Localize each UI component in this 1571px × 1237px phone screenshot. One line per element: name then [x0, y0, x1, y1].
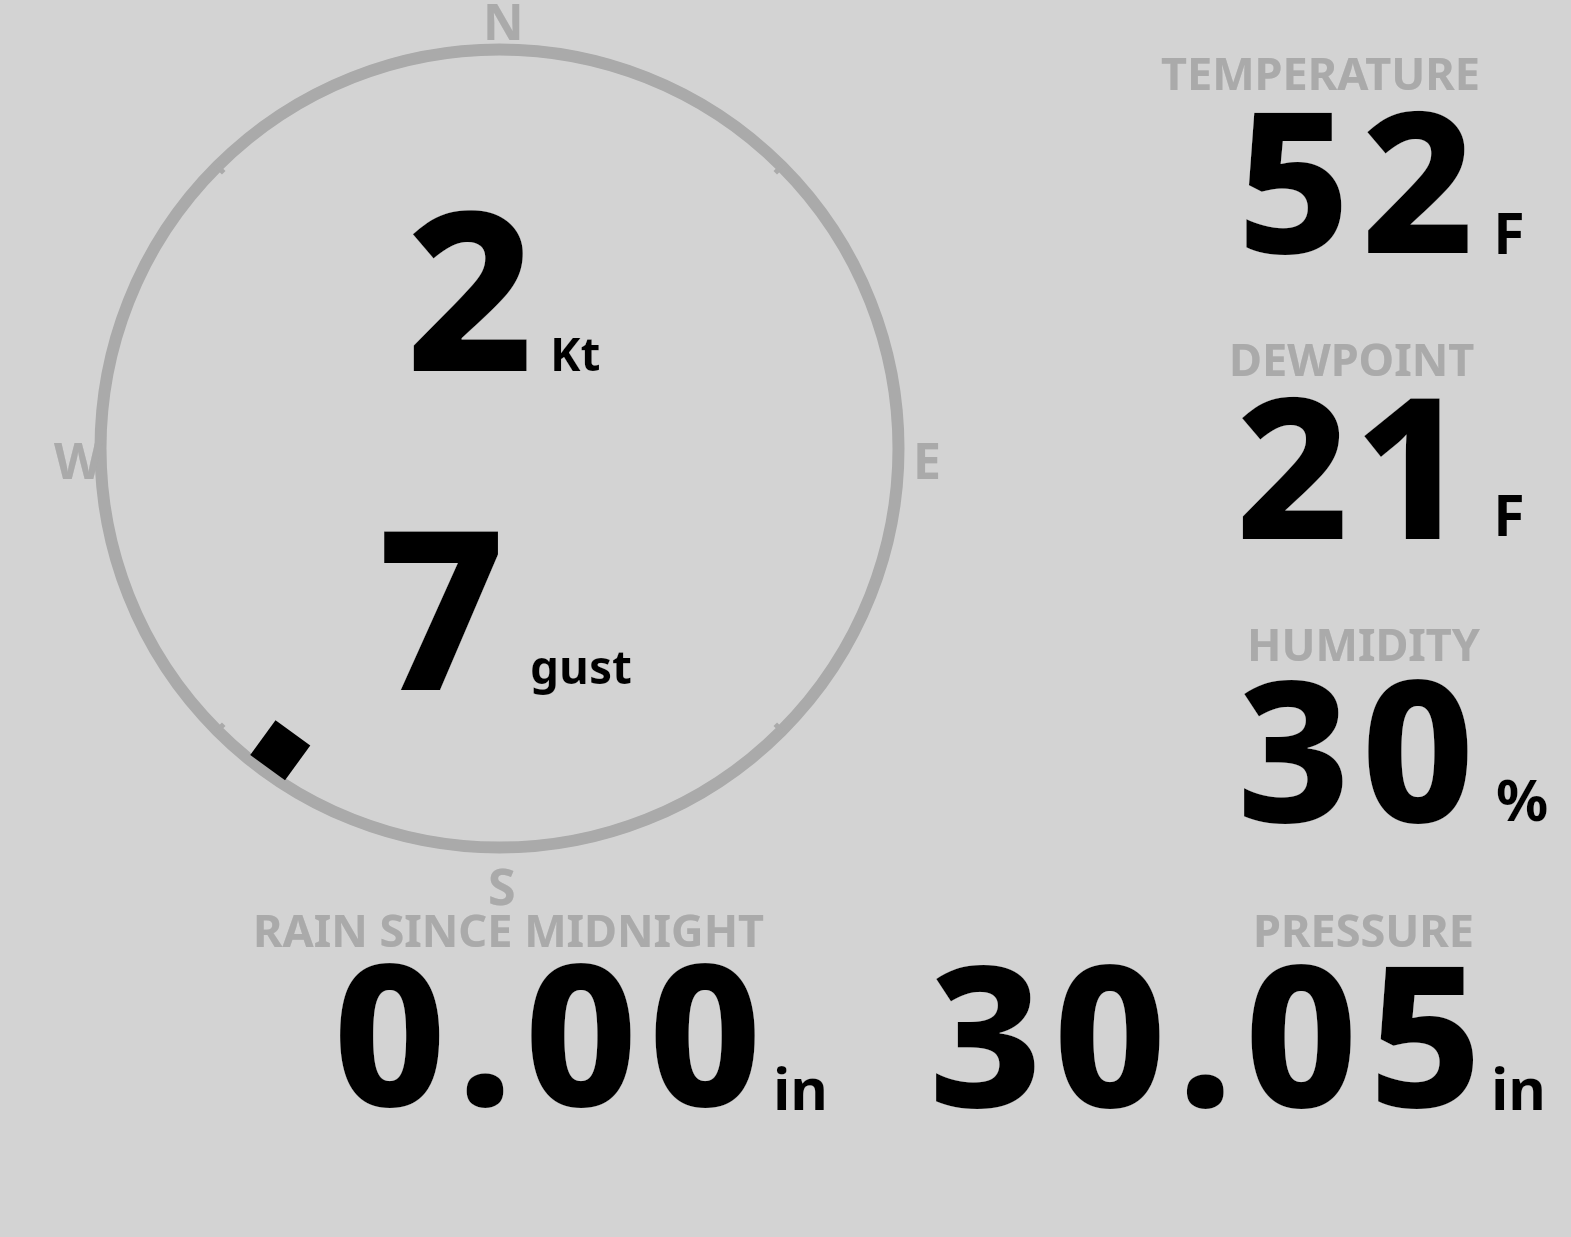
- staticText: W: [54, 426, 103, 494]
- button[interactable]: Wind 2 knots gusting 7, direction south-…: [90, 40, 920, 870]
- staticText: 21: [1236, 329, 1473, 596]
- button[interactable]: Temperature 52 degrees Fahrenheit: [1040, 40, 1560, 270]
- staticText: in: [773, 1048, 829, 1127]
- staticText: in: [1491, 1048, 1547, 1127]
- staticText: HUMIDITY: [1247, 613, 1480, 674]
- staticText: Kt: [550, 322, 601, 385]
- staticText: 30: [1237, 612, 1486, 879]
- staticText: 0.00: [333, 896, 773, 1163]
- staticText: S: [488, 852, 516, 920]
- button[interactable]: Dew point 21 degrees Fahrenheit: [1040, 325, 1560, 555]
- staticText: F: [1493, 192, 1525, 271]
- button[interactable]: Humidity 30 percent: [1040, 610, 1560, 840]
- staticText: TEMPERATURE: [1161, 42, 1480, 103]
- staticText: 30.05: [929, 897, 1494, 1164]
- staticText: N: [483, 0, 524, 55]
- staticText: 7: [377, 453, 506, 755]
- staticText: F: [1493, 474, 1525, 553]
- staticText: 2: [406, 134, 535, 436]
- staticText: gust: [530, 635, 633, 698]
- button[interactable]: Rain since midnight 0.00 inches: [240, 895, 840, 1125]
- staticText: RAIN SINCE MIDNIGHT: [253, 899, 765, 960]
- staticText: E: [913, 426, 941, 494]
- staticText: DEWPOINT: [1229, 328, 1475, 389]
- staticText: %: [1496, 759, 1549, 838]
- button[interactable]: Pressure 30.05 inches: [930, 895, 1550, 1125]
- staticText: PRESSURE: [1253, 899, 1474, 960]
- staticText: 52: [1237, 43, 1486, 310]
